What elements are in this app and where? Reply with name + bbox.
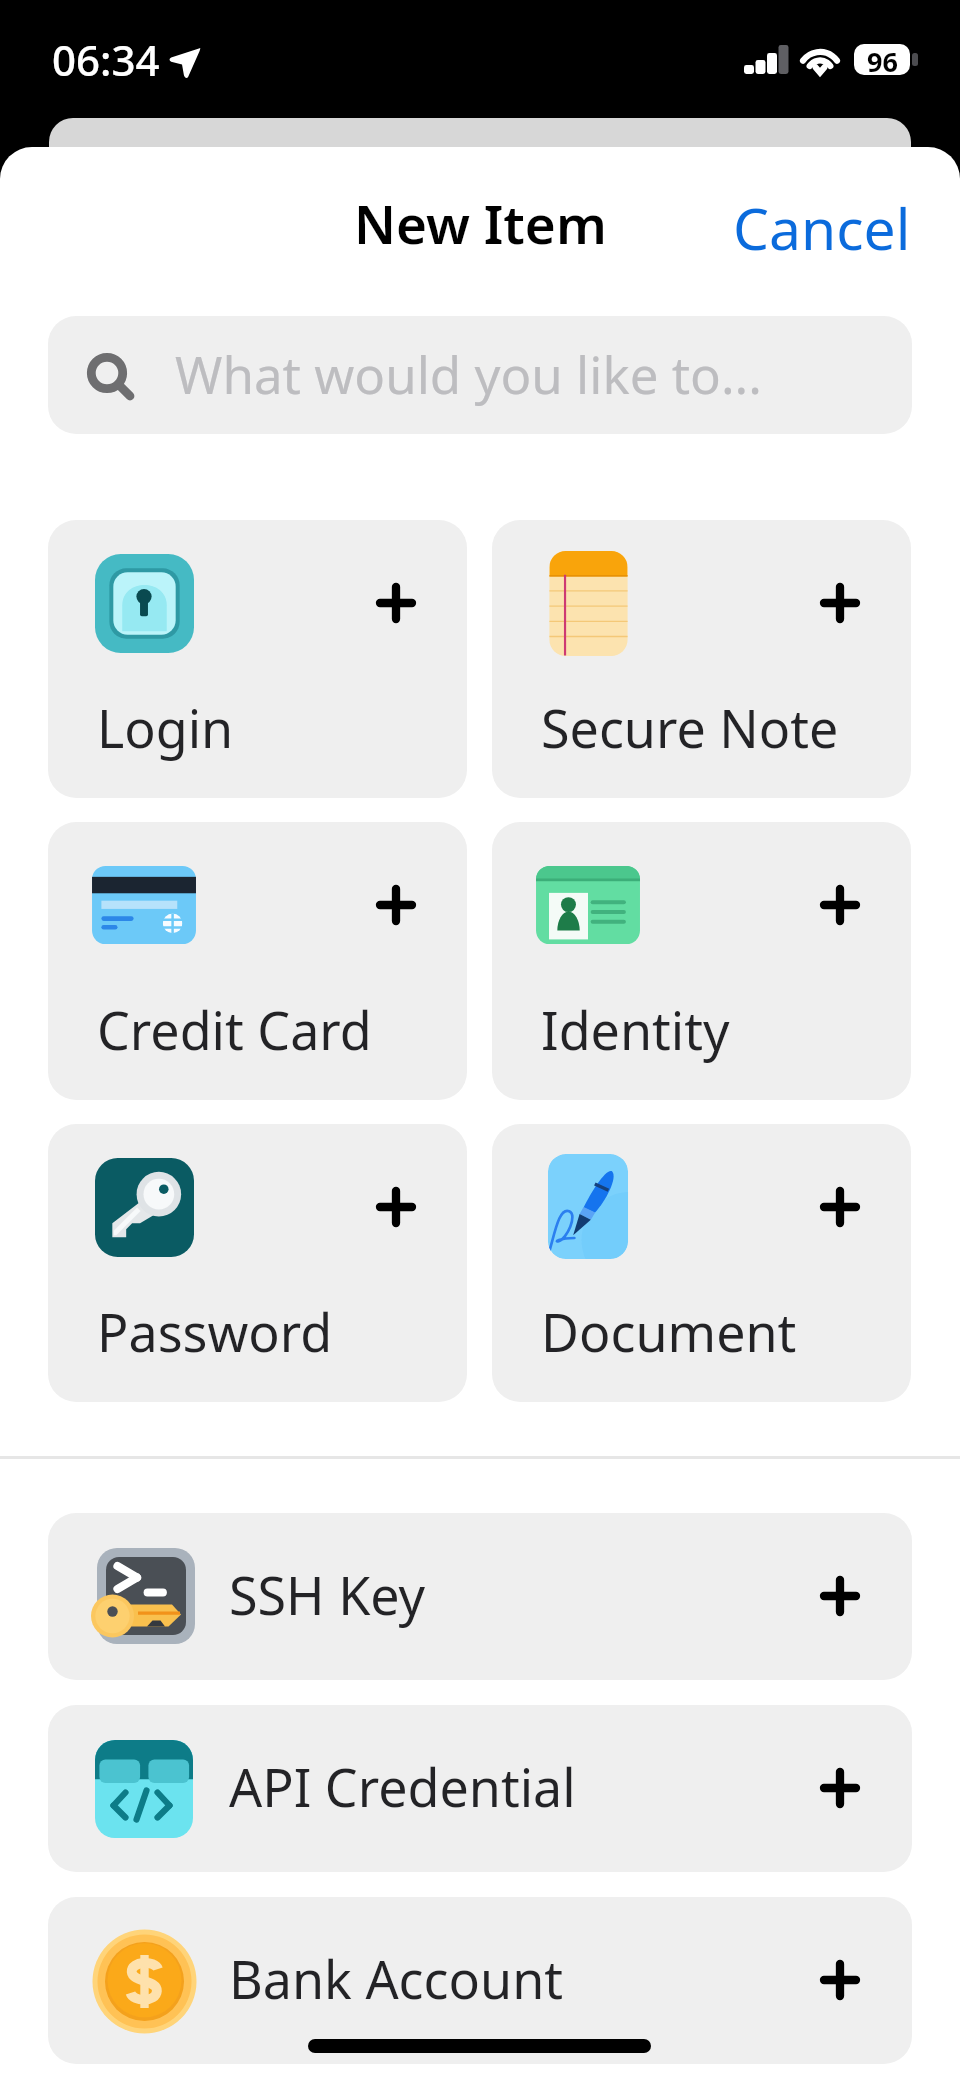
staticText: Identity <box>541 994 730 1065</box>
staticText: Credit Card <box>97 994 372 1065</box>
button[interactable]: Add Password <box>368 1179 424 1235</box>
staticText: Cancel <box>733 189 911 267</box>
button[interactable]: API Credential <box>48 1705 912 1872</box>
button[interactable]: Add Credit Card <box>48 822 467 1100</box>
button[interactable]: Add SSH Key <box>812 1568 868 1624</box>
button[interactable]: Add API Credential <box>812 1760 868 1816</box>
staticText: API Credential <box>229 1751 576 1822</box>
button[interactable]: Add Secure Note <box>492 520 911 798</box>
button[interactable]: SSH Key <box>48 1513 912 1680</box>
button[interactable]: Add Bank Account <box>812 1952 868 2008</box>
staticText: Document <box>541 1296 797 1367</box>
staticText: SSH Key <box>229 1559 426 1630</box>
staticText: New Item <box>354 187 607 259</box>
staticText: 06:34 <box>52 31 160 88</box>
button[interactable]: Cancel <box>715 175 929 281</box>
staticText: Bank Account <box>229 1943 564 2014</box>
staticText: Password <box>97 1296 333 1367</box>
button[interactable]: Add Document <box>812 1179 868 1235</box>
staticText: 96 <box>867 44 898 74</box>
button[interactable]: Add Password <box>48 1124 467 1402</box>
button[interactable]: Add Login <box>368 575 424 631</box>
button[interactable]: Add Credit Card <box>368 877 424 933</box>
button[interactable]: Add Secure Note <box>812 575 868 631</box>
button[interactable]: What would you like to... <box>48 316 912 434</box>
staticText: What would you like to... <box>175 339 762 408</box>
button[interactable]: Add Document <box>492 1124 911 1402</box>
staticText: Login <box>97 692 234 763</box>
button[interactable]: Add Login <box>48 520 467 798</box>
button[interactable]: Bank Account <box>48 1897 912 2064</box>
button[interactable]: Add Identity <box>492 822 911 1100</box>
button[interactable]: Add Identity <box>812 877 868 933</box>
staticText: Secure Note <box>541 692 839 763</box>
